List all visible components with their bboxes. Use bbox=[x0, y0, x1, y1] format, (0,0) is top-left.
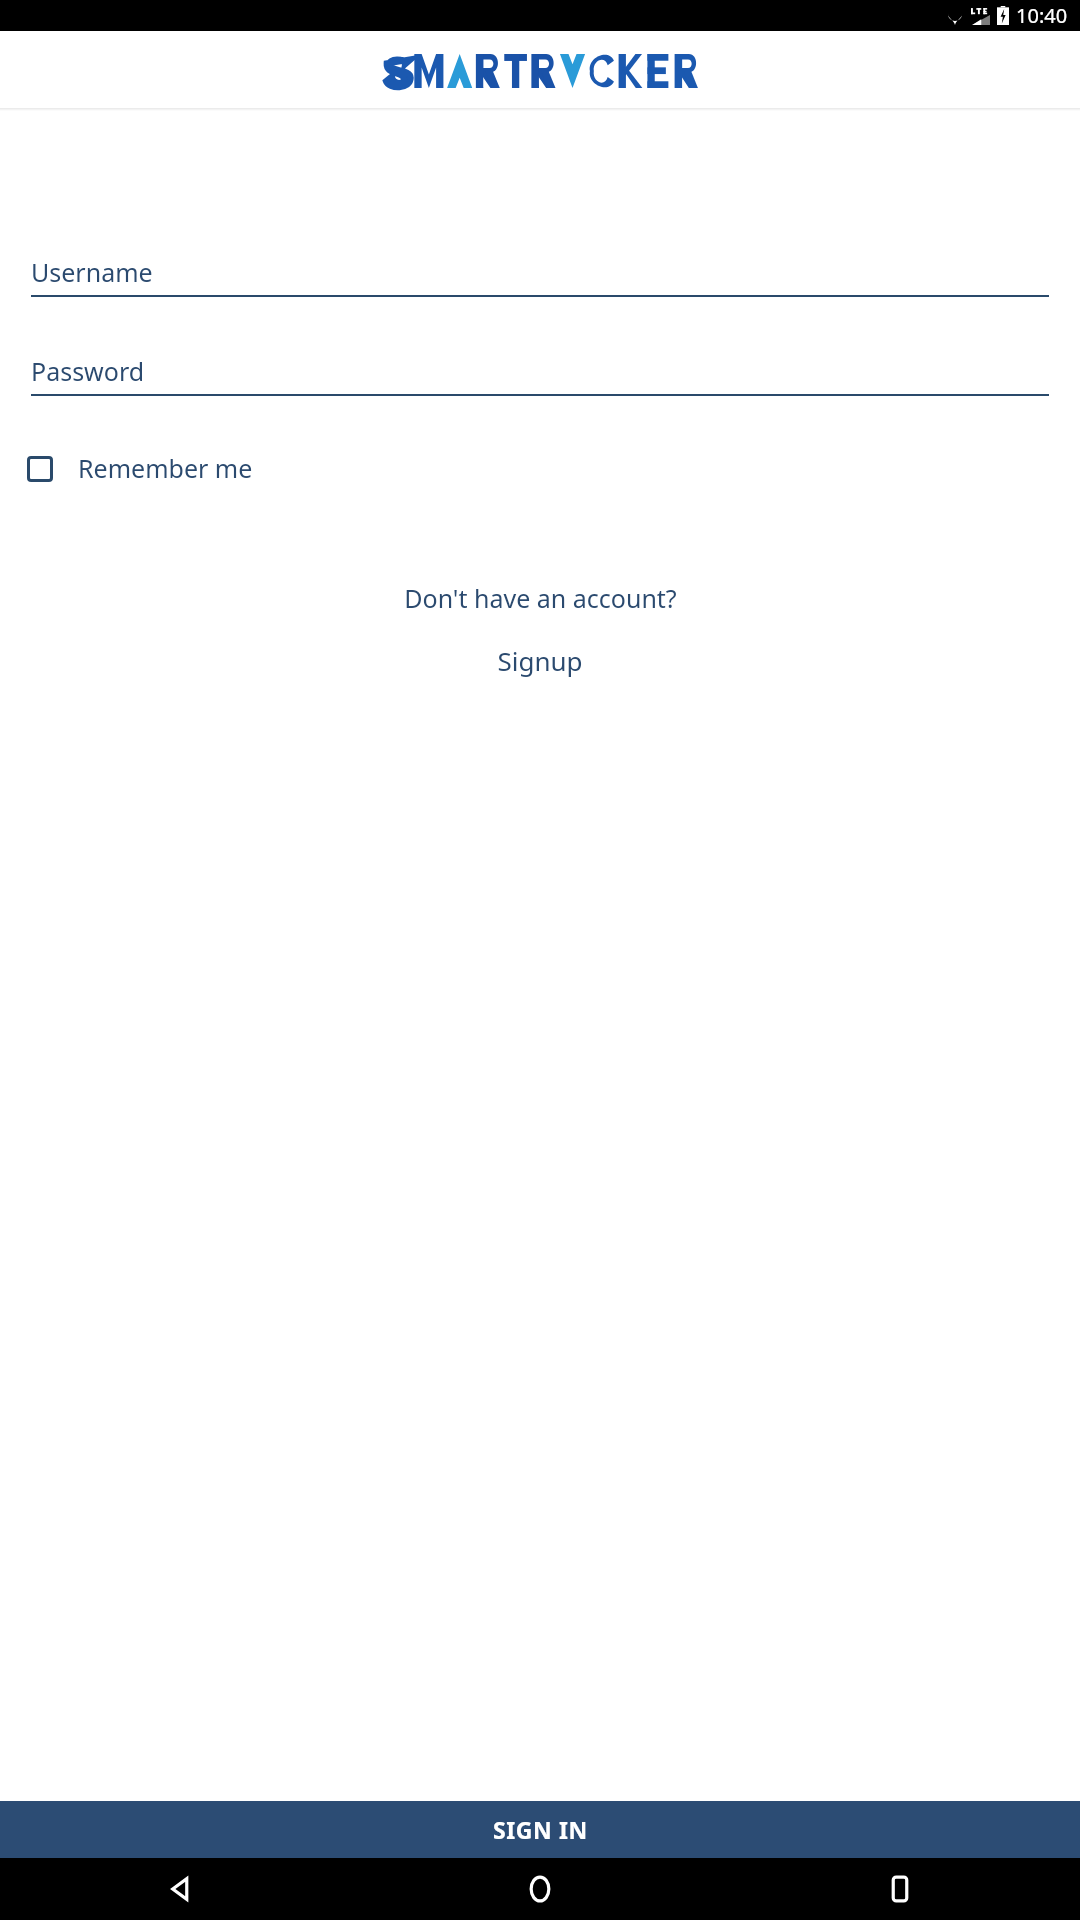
staticText: SIGN IN bbox=[493, 1814, 588, 1845]
button[interactable]: Don't have an account? bbox=[0, 581, 1080, 615]
button[interactable]: Password bbox=[31, 354, 1049, 396]
button[interactable]: Home bbox=[360, 1858, 720, 1920]
staticText: Username bbox=[31, 255, 153, 289]
staticText: Remember me bbox=[78, 451, 253, 485]
button[interactable]: Remember me bbox=[23, 451, 1080, 485]
button[interactable]: Recent apps bbox=[720, 1858, 1080, 1920]
staticText: 10:40 bbox=[1016, 2, 1068, 29]
staticText: Signup bbox=[497, 643, 583, 678]
button[interactable]: Signup bbox=[0, 643, 1080, 678]
button[interactable]: SIGN IN bbox=[0, 1801, 1080, 1858]
staticText: Don't have an account? bbox=[404, 581, 677, 615]
button[interactable]: Back bbox=[0, 1858, 360, 1920]
staticText: Password bbox=[31, 354, 145, 388]
button[interactable]: Username bbox=[31, 255, 1049, 297]
